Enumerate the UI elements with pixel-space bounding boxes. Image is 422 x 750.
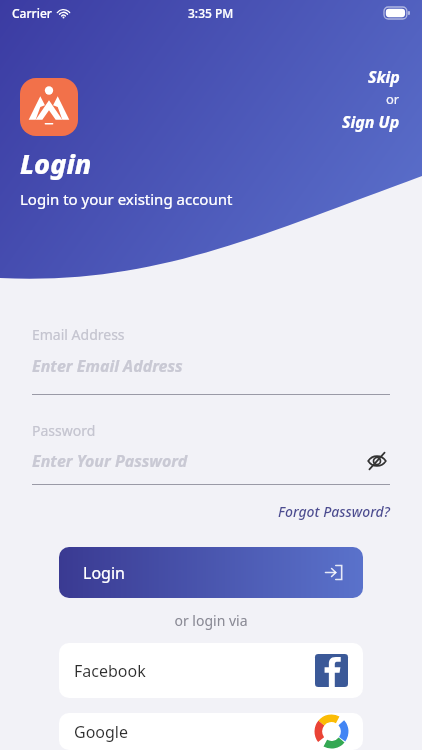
button[interactable]: Facebook bbox=[59, 643, 363, 698]
staticText: Email Address bbox=[32, 325, 125, 344]
staticText: Carrier bbox=[12, 5, 52, 21]
staticText: 3:35 PM bbox=[188, 5, 234, 21]
button[interactable]: Google bbox=[59, 713, 363, 750]
staticText: Login bbox=[20, 145, 92, 182]
staticText: Skip bbox=[368, 66, 400, 88]
button[interactable]: Enter Email Address bbox=[32, 355, 390, 377]
staticText: Forgot Password? bbox=[278, 502, 390, 521]
staticText: Sign Up bbox=[342, 111, 400, 133]
staticText: Google bbox=[74, 721, 129, 743]
staticText: or login via bbox=[0, 611, 422, 630]
button[interactable]: Show password bbox=[364, 448, 390, 474]
button[interactable]: Sign Up bbox=[342, 111, 400, 133]
staticText: Login bbox=[83, 562, 125, 584]
button[interactable]: Login bbox=[59, 547, 363, 598]
staticText: or bbox=[386, 90, 400, 108]
button[interactable]: Skip bbox=[368, 66, 400, 88]
staticText: Facebook bbox=[74, 660, 146, 682]
staticText: Enter Your Password bbox=[32, 450, 188, 472]
staticText: Password bbox=[32, 421, 96, 440]
button[interactable]: App logo bbox=[20, 78, 78, 136]
staticText: Enter Email Address bbox=[32, 355, 183, 377]
button[interactable]: Forgot Password? bbox=[278, 502, 390, 521]
button[interactable]: Enter Your Password bbox=[32, 450, 364, 472]
staticText: Login to your existing account bbox=[20, 189, 233, 209]
